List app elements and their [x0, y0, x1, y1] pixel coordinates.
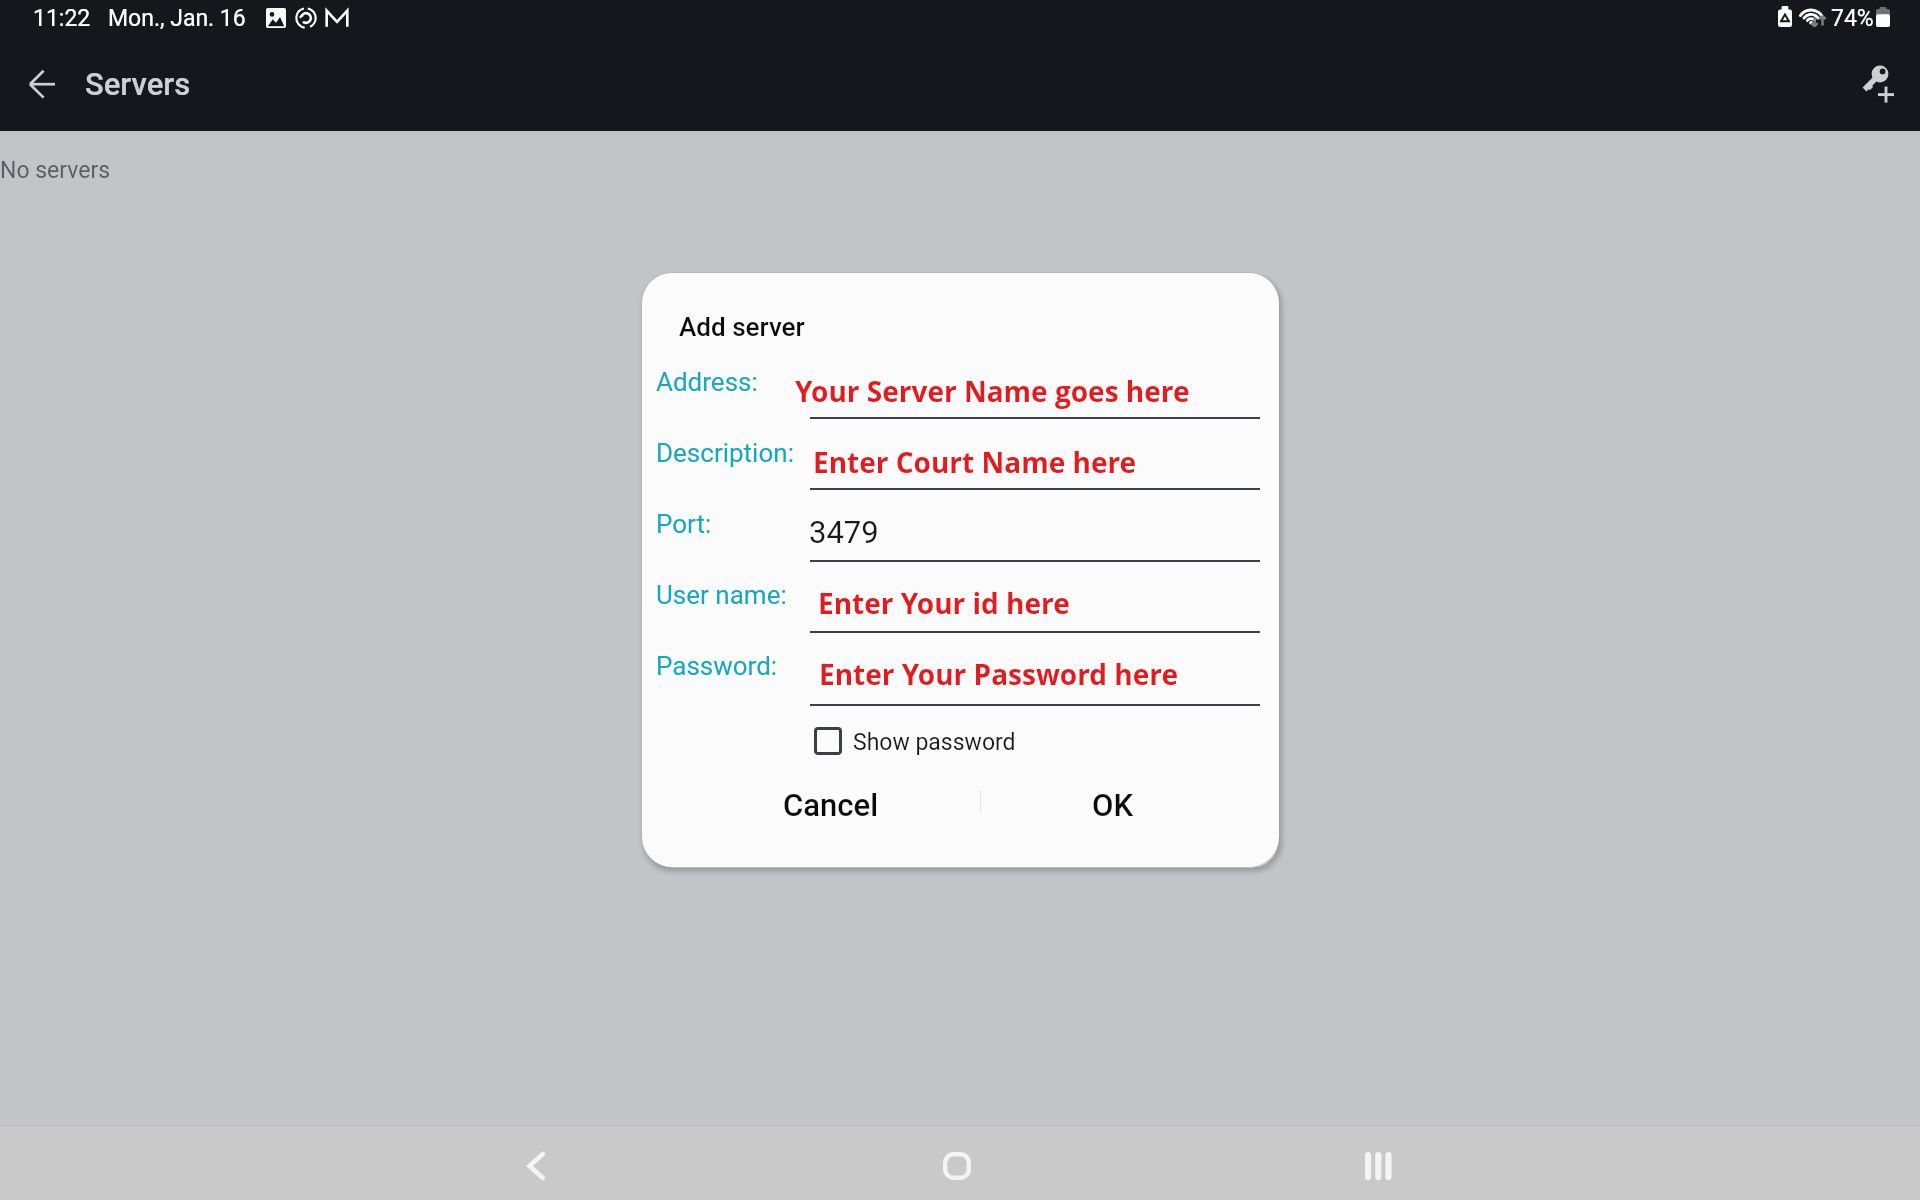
- button[interactable]: Home: [917, 1140, 997, 1192]
- staticText: Password:: [656, 651, 778, 681]
- staticText: Enter Your id here: [818, 584, 1070, 622]
- staticText: User name:: [656, 580, 787, 610]
- button[interactable]: Add credentials: [1847, 43, 1909, 105]
- staticText: Show password: [853, 729, 1016, 756]
- button[interactable]: Back: [496, 1140, 576, 1192]
- button[interactable]: Enter Your id here: [810, 579, 1260, 633]
- button[interactable]: Cancel: [746, 770, 916, 815]
- staticText: No servers: [0, 157, 111, 184]
- button[interactable]: Enter Court Name here: [810, 437, 1260, 490]
- staticText: Your Server Name goes here: [795, 372, 1190, 410]
- staticText: Enter Your Password here: [819, 655, 1178, 693]
- staticText: Enter Court Name here: [813, 443, 1137, 481]
- staticText: Cancel: [783, 787, 879, 823]
- staticText: Address:: [656, 367, 758, 397]
- button[interactable]: Enter Your Password here: [810, 650, 1260, 706]
- staticText: OK: [1092, 787, 1133, 823]
- staticText: Servers: [85, 66, 191, 102]
- button[interactable]: Navigate up: [12, 55, 72, 115]
- staticText: 11:22: [33, 5, 91, 32]
- button[interactable]: Show password: [808, 717, 1048, 759]
- staticText: 3479: [809, 514, 879, 550]
- button[interactable]: Your Server Name goes here: [810, 366, 1260, 419]
- button[interactable]: Recent apps: [1338, 1140, 1418, 1192]
- staticText: 74%: [1831, 5, 1874, 32]
- staticText: Mon., Jan. 16: [108, 5, 246, 32]
- staticText: Port:: [656, 509, 712, 539]
- staticText: Add server: [679, 312, 805, 342]
- button[interactable]: OK: [1024, 770, 1194, 815]
- staticText: Description:: [656, 438, 794, 468]
- button[interactable]: 3479: [810, 508, 1260, 561]
